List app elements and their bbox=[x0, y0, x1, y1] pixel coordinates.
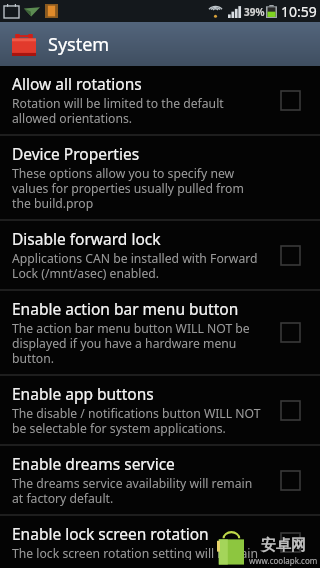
button[interactable]: Toggle Enable action bar menu button bbox=[272, 314, 308, 350]
button[interactable]: Toggle Enable dreams service bbox=[272, 462, 308, 498]
staticText: 10:59 bbox=[281, 2, 317, 21]
staticText: Disable forward lock bbox=[12, 228, 161, 249]
button[interactable]: Toggle Disable forward lock bbox=[272, 237, 308, 273]
staticText: www.coolapk.com bbox=[249, 555, 318, 566]
button[interactable]: Disable forward lock bbox=[0, 221, 320, 289]
staticText: The action bar menu button WILL NOT be d… bbox=[12, 320, 262, 366]
button[interactable]: Enable lock screen rotation bbox=[0, 516, 320, 568]
button[interactable]: Enable app buttons bbox=[0, 376, 320, 444]
staticText: 安卓网 bbox=[261, 536, 306, 555]
button[interactable]: Toggle Enable lock screen rotation bbox=[272, 524, 308, 560]
button[interactable]: Enable action bar menu button bbox=[0, 291, 320, 374]
button[interactable]: Device Properties bbox=[0, 136, 320, 219]
button[interactable]: Enable dreams service bbox=[0, 446, 320, 514]
staticText: Enable dreams service bbox=[12, 453, 175, 474]
staticText: System bbox=[48, 32, 110, 57]
staticText: Allow all rotations bbox=[12, 73, 142, 94]
staticText: Enable lock screen rotation bbox=[12, 523, 209, 544]
staticText: Rotation will be limited to the default … bbox=[12, 95, 262, 126]
staticText: These options allow you to specify new v… bbox=[12, 165, 262, 211]
button[interactable]: Toggle Enable app buttons bbox=[272, 392, 308, 428]
staticText: Enable app buttons bbox=[12, 383, 154, 404]
button[interactable]: Allow all rotations bbox=[0, 66, 320, 134]
staticText: 39% bbox=[244, 5, 265, 19]
staticText: Device Properties bbox=[12, 143, 140, 164]
staticText: Applications CAN be installed with Forwa… bbox=[12, 250, 262, 281]
staticText: The lock screen rotation setting will re… bbox=[12, 545, 262, 560]
staticText: The dreams service availability will rem… bbox=[12, 475, 262, 506]
staticText: The disable / notifications button WILL … bbox=[12, 405, 262, 436]
staticText: Enable action bar menu button bbox=[12, 298, 239, 319]
button[interactable]: Toggle Allow all rotations bbox=[272, 82, 308, 118]
